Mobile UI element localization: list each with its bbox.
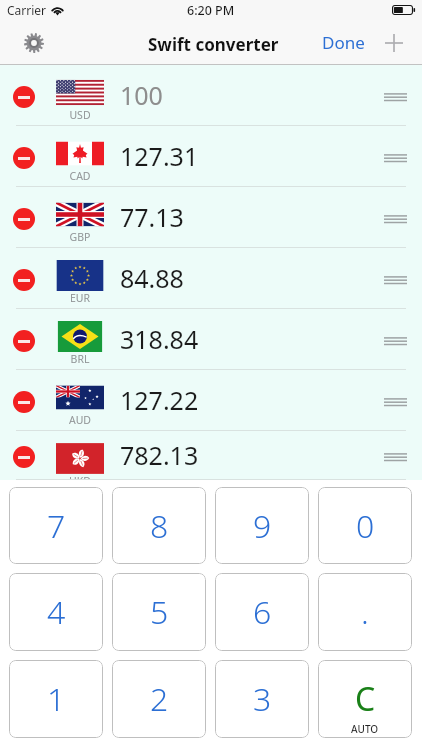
- button[interactable]: Remove CAD: [13, 147, 35, 169]
- button[interactable]: Remove USD: [0, 65, 422, 126]
- button[interactable]: 6: [215, 573, 309, 651]
- button[interactable]: 3: [215, 660, 309, 738]
- staticText: 77.13: [120, 200, 184, 234]
- button[interactable]: Reorder GBP: [376, 187, 422, 248]
- staticText: 5: [150, 590, 169, 634]
- button[interactable]: Remove HKD: [0, 431, 422, 480]
- staticText: Done: [322, 31, 365, 54]
- button[interactable]: 7: [9, 487, 103, 564]
- button[interactable]: Remove CAD: [0, 126, 422, 187]
- staticText: 6: [253, 590, 272, 634]
- staticText: GBP: [56, 230, 104, 244]
- button[interactable]: 4: [9, 573, 103, 651]
- staticText: .: [361, 590, 369, 634]
- staticText: 318.84: [120, 322, 199, 356]
- staticText: 6:20 PM: [187, 2, 235, 19]
- button[interactable]: Reorder HKD: [376, 431, 422, 480]
- button[interactable]: 2: [112, 660, 206, 738]
- button[interactable]: Reorder USD: [376, 65, 422, 126]
- staticText: 2: [150, 677, 169, 721]
- button[interactable]: Reorder BRL: [376, 309, 422, 370]
- button[interactable]: Remove HKD: [13, 446, 35, 468]
- button[interactable]: 9: [215, 487, 309, 564]
- button[interactable]: Remove AUD: [0, 370, 422, 431]
- button[interactable]: 1: [9, 660, 103, 738]
- staticText: USD: [56, 108, 104, 122]
- staticText: 782.13: [120, 438, 199, 472]
- staticText: HKD: [56, 474, 104, 480]
- staticText: 127.22: [120, 383, 199, 417]
- button[interactable]: Remove EUR: [13, 269, 35, 291]
- button[interactable]: Reorder CAD: [376, 126, 422, 187]
- button[interactable]: Remove GBP: [0, 187, 422, 248]
- button[interactable]: Remove USD: [13, 86, 35, 108]
- staticText: 127.31: [120, 139, 199, 173]
- button[interactable]: C: [318, 660, 412, 738]
- staticText: CAD: [56, 169, 104, 183]
- staticText: AUD: [56, 413, 104, 427]
- staticText: 4: [47, 590, 66, 634]
- button[interactable]: .: [318, 573, 412, 651]
- staticText: 3: [253, 677, 272, 721]
- staticText: C: [355, 677, 376, 721]
- staticText: 84.88: [120, 261, 184, 295]
- button[interactable]: Done: [313, 20, 374, 65]
- staticText: Carrier: [7, 2, 47, 18]
- button[interactable]: Remove BRL: [13, 330, 35, 352]
- button[interactable]: 0: [318, 487, 412, 564]
- staticText: Swift converter: [148, 33, 279, 56]
- staticText: 1: [47, 677, 66, 721]
- button[interactable]: Reorder EUR: [376, 248, 422, 309]
- staticText: AUTO: [351, 722, 379, 736]
- staticText: 7: [47, 504, 66, 548]
- button[interactable]: Reorder AUD: [376, 370, 422, 431]
- staticText: EUR: [56, 291, 104, 305]
- button[interactable]: Remove EUR: [0, 248, 422, 309]
- button[interactable]: 5: [112, 573, 206, 651]
- button[interactable]: Settings: [0, 20, 54, 65]
- staticText: 9: [253, 504, 272, 548]
- button[interactable]: Remove BRL: [0, 309, 422, 370]
- button[interactable]: Remove AUD: [13, 391, 35, 413]
- button[interactable]: Remove GBP: [13, 208, 35, 230]
- staticText: 100: [120, 78, 163, 112]
- staticText: 8: [150, 504, 169, 548]
- button[interactable]: 8: [112, 487, 206, 564]
- button[interactable]: Add currency: [374, 20, 422, 65]
- staticText: 0: [356, 504, 375, 548]
- staticText: BRL: [56, 352, 104, 366]
